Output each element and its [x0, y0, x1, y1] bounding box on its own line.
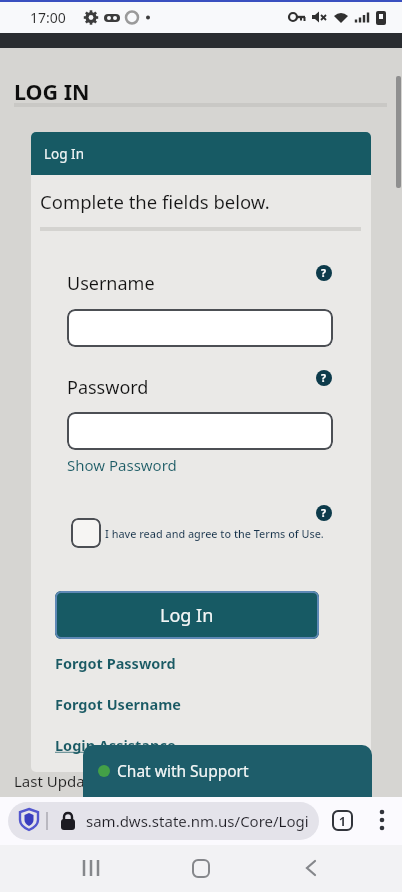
button[interactable]: Chat with Support — [83, 745, 372, 797]
button[interactable]: Log In — [55, 591, 319, 639]
staticText: 17:00 — [30, 8, 66, 27]
staticText: ? — [321, 371, 327, 385]
button[interactable]: Forgot Password — [55, 653, 176, 673]
staticText: Complete the fields below. — [40, 189, 270, 214]
button[interactable]: Login Assistance — [55, 735, 176, 755]
staticText: LOG IN — [14, 77, 90, 106]
staticText: Log In — [44, 145, 84, 163]
button[interactable] — [67, 412, 333, 450]
button[interactable] — [67, 309, 333, 347]
button[interactable]: I have read and agree to the Terms of Us… — [71, 518, 320, 548]
staticText: ? — [321, 266, 327, 280]
staticText: Log In — [160, 603, 214, 628]
staticText: ? — [321, 506, 327, 520]
staticText: Chat with Support — [117, 760, 249, 781]
button[interactable] — [82, 860, 100, 876]
button[interactable] — [305, 860, 316, 876]
button[interactable]: sam.dws.state.nm.us/Core/Logi — [8, 802, 319, 840]
staticText: I have read and agree to the Terms of Us… — [105, 526, 324, 541]
staticText: sam.dws.state.nm.us/Core/Logi — [86, 811, 309, 831]
staticText: 1 — [339, 813, 346, 829]
button[interactable]: Forgot Username — [55, 694, 181, 714]
button[interactable] — [192, 859, 210, 878]
staticText: Username — [67, 271, 155, 296]
button[interactable] — [378, 808, 386, 830]
staticText: Last Upda — [14, 771, 85, 791]
staticText: Password — [67, 375, 149, 400]
button[interactable]: 1 — [332, 810, 353, 831]
button[interactable]: Show Password — [67, 455, 177, 475]
